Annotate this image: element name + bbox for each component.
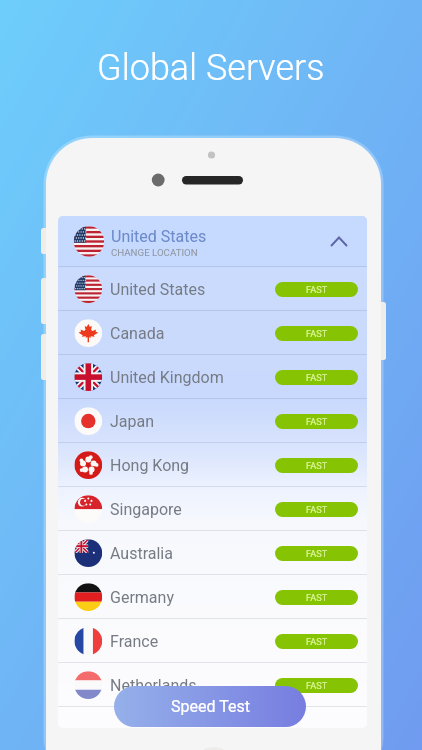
button[interactable]: Japan [58,399,367,443]
staticText: Hong Kong [110,456,190,475]
staticText: Australia [110,544,173,563]
button[interactable]: United States [58,267,367,311]
staticText: Global Servers [97,47,325,89]
staticText: FAST [306,460,328,471]
staticText: FAST [306,636,328,647]
button[interactable]: Singapore [58,487,367,531]
staticText: Canada [110,324,165,343]
button[interactable]: United Kingdom [58,355,367,399]
button[interactable]: Netherlands [58,663,367,707]
staticText: Germany [110,588,174,607]
staticText: FAST [306,416,328,427]
staticText: United States [110,280,206,299]
button[interactable]: Australia [58,531,367,575]
button[interactable]: Germany [58,575,367,619]
staticText: Speed Test [171,697,250,716]
staticText: FAST [306,504,328,515]
staticText: France [110,632,159,651]
button[interactable]: Collapse [319,216,359,267]
button[interactable]: United States [58,216,367,267]
button[interactable]: Speed Test [114,686,306,727]
staticText: FAST [306,680,328,691]
staticText: FAST [306,284,328,295]
staticText: FAST [306,328,328,339]
staticText: United Kingdom [110,368,224,387]
button[interactable]: Hong Kong [58,443,367,487]
staticText: Japan [110,412,155,431]
staticText: Netherlands [110,676,197,695]
staticText: FAST [306,372,328,383]
button[interactable]: France [58,619,367,663]
staticText: Singapore [110,500,182,519]
button[interactable]: Canada [58,311,367,355]
staticText: CHANGE LOCATION [111,247,198,258]
staticText: United States [111,227,207,246]
staticText: FAST [306,592,328,603]
staticText: FAST [306,548,328,559]
